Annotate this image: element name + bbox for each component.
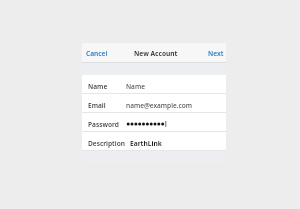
staticText: Description <box>88 139 125 148</box>
button[interactable]: Name <box>82 75 226 94</box>
staticText: name@example.com <box>126 101 193 110</box>
staticText: Cancel <box>86 49 108 58</box>
staticText: Email <box>88 101 121 110</box>
button[interactable]: Cancel <box>82 45 112 62</box>
staticText: Name <box>88 82 121 91</box>
staticText: Next <box>208 49 224 58</box>
button[interactable]: Description <box>82 132 226 151</box>
button[interactable]: Next <box>205 45 226 62</box>
staticText: Name <box>126 82 145 91</box>
button[interactable]: Password <box>82 113 226 132</box>
button[interactable]: Email <box>82 94 226 113</box>
staticText: Password <box>88 120 121 129</box>
staticText: EarthLink <box>130 139 162 148</box>
staticText: New Account <box>134 49 178 58</box>
